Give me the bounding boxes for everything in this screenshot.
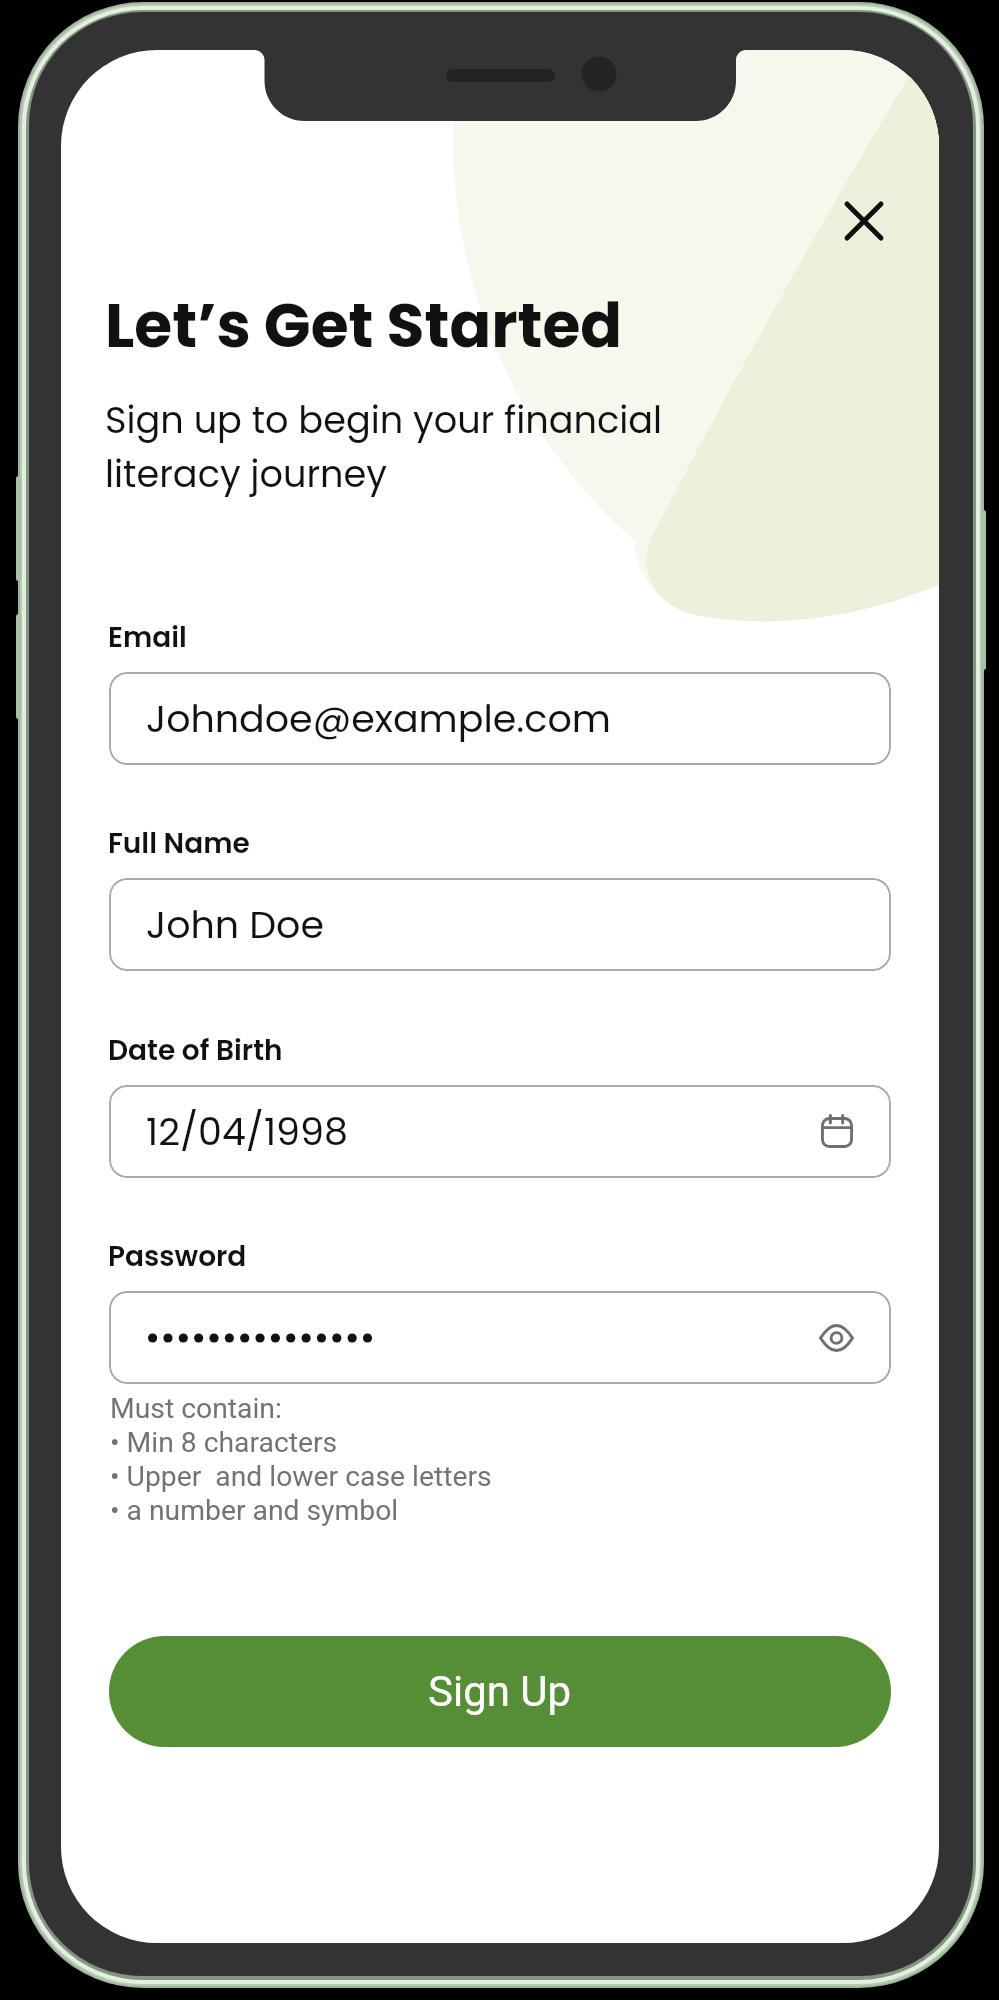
button[interactable]: Power [981, 510, 986, 670]
button[interactable]: Volume down [16, 614, 21, 719]
button[interactable]: Close [832, 189, 896, 253]
staticText: Sign Up [428, 1667, 572, 1716]
button[interactable]: Volume up [16, 476, 21, 581]
button[interactable]: Sign Up [109, 1636, 891, 1747]
button[interactable]: 12/04/1998 [109, 1085, 891, 1178]
staticText: Must contain: • Min 8 characters • Upper… [110, 1392, 492, 1527]
button[interactable] [109, 1291, 891, 1384]
staticText: Full Name [108, 824, 250, 863]
staticText: Johndoe@example.com [146, 692, 611, 745]
staticText: Email [108, 618, 187, 657]
staticText: Password [108, 1237, 247, 1276]
staticText: 12/04/1998 [146, 1105, 348, 1158]
button[interactable]: John Doe [109, 878, 891, 971]
staticText: Let’s Get Started [105, 282, 623, 368]
staticText: Sign up to begin your financial literacy… [105, 394, 663, 499]
button[interactable]: Johndoe@example.com [109, 672, 891, 765]
staticText: John Doe [146, 898, 324, 951]
staticText: Date of Birth [108, 1031, 283, 1070]
